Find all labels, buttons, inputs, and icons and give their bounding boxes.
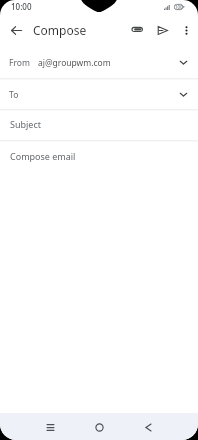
button[interactable]: More options bbox=[175, 19, 197, 41]
button[interactable]: Compose email bbox=[0, 142, 198, 172]
staticText: aj@groupwm.com bbox=[38, 57, 111, 69]
staticText: From bbox=[9, 57, 30, 69]
button[interactable]: Expand bbox=[175, 86, 191, 102]
staticText: Subject bbox=[10, 118, 42, 130]
button[interactable]: Back bbox=[135, 414, 161, 440]
button[interactable]: Back bbox=[4, 18, 28, 42]
button[interactable]: Subject bbox=[0, 111, 198, 140]
button[interactable]: Expand bbox=[175, 54, 191, 70]
button[interactable]: Attach file bbox=[127, 19, 149, 41]
button[interactable]: To bbox=[0, 80, 198, 109]
button[interactable]: Home bbox=[86, 414, 112, 440]
staticText: 100 bbox=[175, 4, 183, 10]
staticText: Compose bbox=[33, 22, 87, 38]
staticText: 10:00 bbox=[11, 1, 32, 12]
staticText: To bbox=[9, 89, 19, 101]
button[interactable]: Send bbox=[151, 19, 173, 41]
staticText: Compose email bbox=[10, 150, 76, 162]
button[interactable]: Recent apps bbox=[37, 414, 63, 440]
button[interactable]: From bbox=[0, 47, 198, 78]
